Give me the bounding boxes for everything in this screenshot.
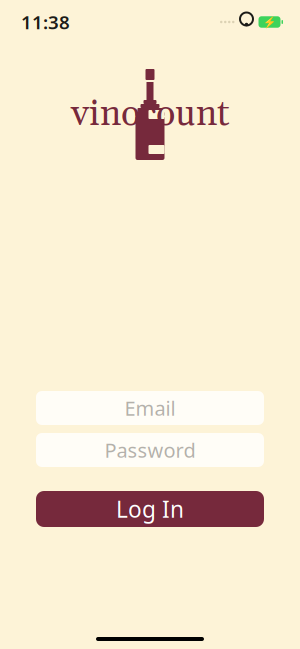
staticText: Log In <box>116 494 184 524</box>
staticText: vinocount <box>71 92 229 137</box>
button[interactable]: Email <box>36 391 264 425</box>
button[interactable]: Password <box>36 433 264 467</box>
button[interactable]: Log In <box>36 491 264 527</box>
staticText: Password <box>104 437 195 463</box>
staticText: Email <box>124 395 175 421</box>
staticText: ⚡ <box>263 16 276 28</box>
staticText: 11:38 <box>21 10 70 34</box>
